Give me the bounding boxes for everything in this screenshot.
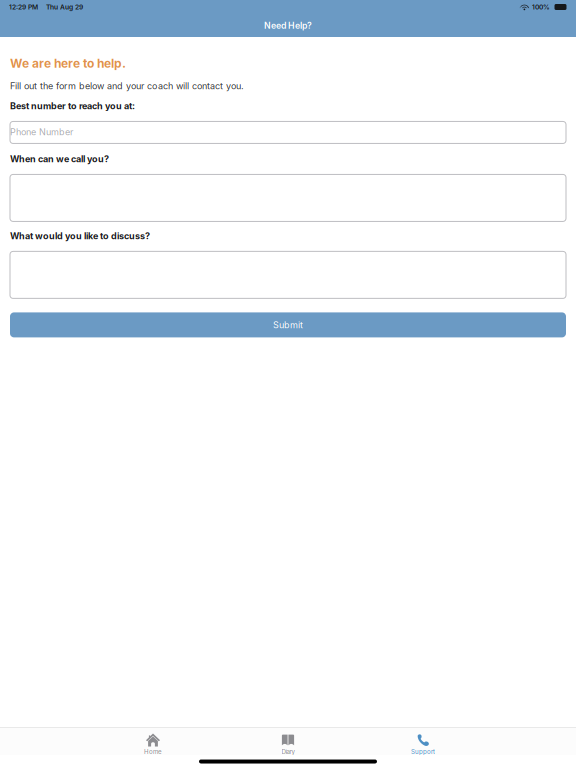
button[interactable]: Submit: [10, 312, 566, 337]
staticText: Fill out the form below and your coach w…: [10, 80, 244, 91]
staticText: Best number to reach you at:: [10, 100, 135, 111]
staticText: Need Help?: [264, 20, 312, 31]
staticText: Phone Number: [10, 126, 73, 137]
button[interactable]: Home: [108, 728, 198, 759]
staticText: Support: [411, 748, 435, 755]
button[interactable]: Phone Number: [10, 121, 566, 143]
button[interactable]: Text field: [10, 174, 566, 221]
staticText: 12:29 PM: [9, 3, 38, 11]
staticText: We are here to help.: [10, 56, 126, 70]
staticText: Thu Aug 29: [46, 3, 83, 11]
staticText: Diary: [281, 748, 294, 755]
staticText: Submit: [273, 319, 303, 330]
staticText: Home: [144, 748, 162, 755]
button[interactable]: Text field: [10, 251, 566, 298]
staticText: What would you like to discuss?: [10, 230, 150, 241]
staticText: 100%: [532, 3, 550, 11]
button[interactable]: Diary: [243, 728, 333, 759]
button[interactable]: Support: [378, 728, 468, 759]
staticText: When can we call you?: [10, 153, 109, 164]
button[interactable]: Need Help?: [256, 16, 320, 35]
